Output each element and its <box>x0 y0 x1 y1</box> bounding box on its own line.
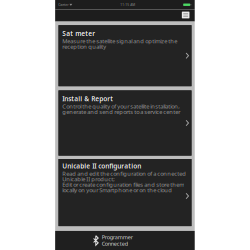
staticText: Unicable II product; <box>62 175 115 183</box>
staticText: Read and edit the configuration of a con… <box>62 170 186 177</box>
staticText: 11:15 AM <box>120 3 135 7</box>
staticText: Unicable II configuration <box>62 161 141 170</box>
button[interactable]: Menu <box>182 12 195 22</box>
staticText: locally on your Smartphone or on the clo… <box>62 186 172 194</box>
staticText: Edit or create configuration files and s… <box>62 181 184 188</box>
staticText: Carrier <box>58 2 68 7</box>
button[interactable]: Install & Report <box>58 90 191 156</box>
staticText: Measure the satellite signal and optimiz… <box>62 37 177 45</box>
staticText: generate and send reports to a service c… <box>62 108 180 116</box>
staticText: Programmer <box>102 233 133 241</box>
staticText: Connected <box>102 240 128 247</box>
staticText: Control the quality of your satellite in… <box>62 102 180 110</box>
button[interactable]: Unicable II configuration <box>58 159 191 226</box>
staticText: reception quality <box>62 43 106 50</box>
button[interactable]: Sat meter <box>58 25 191 86</box>
staticText: Sat meter <box>62 29 95 38</box>
staticText: Install & Report <box>62 94 113 103</box>
